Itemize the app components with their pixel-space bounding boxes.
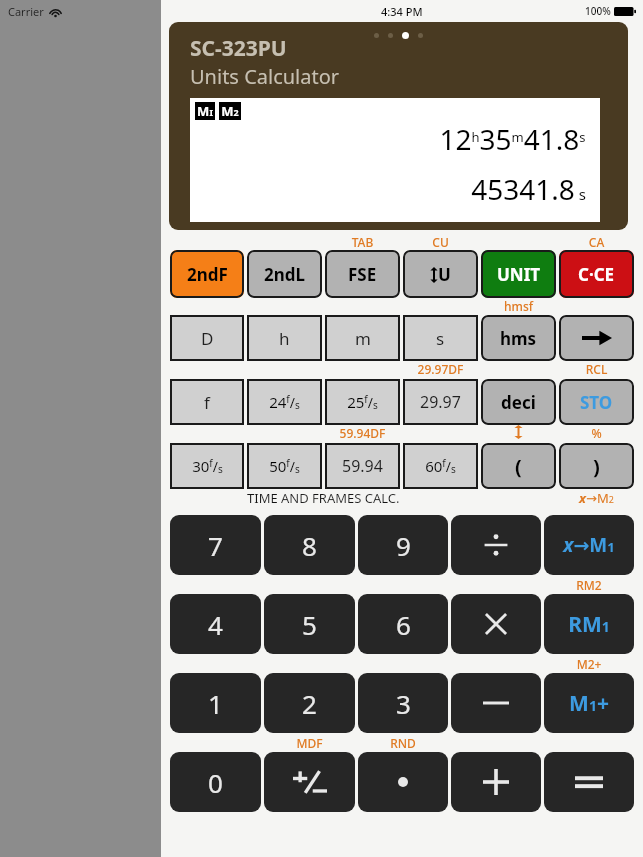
staticText: 4 xyxy=(208,607,223,642)
button[interactable]: 6 xyxy=(358,594,448,654)
staticText: RCL xyxy=(559,361,634,377)
button[interactable]: 2ndF xyxy=(170,250,244,298)
button[interactable]: x→M1 xyxy=(544,515,634,575)
button[interactable]: 60f/s xyxy=(403,443,478,489)
button[interactable]: 50f/s xyxy=(247,443,322,489)
staticText: C·CE xyxy=(578,263,615,286)
button[interactable]: 29.97 xyxy=(403,379,478,425)
staticText: FSE xyxy=(348,263,377,286)
button[interactable]: Plus minus xyxy=(264,752,355,812)
button[interactable]: ) xyxy=(559,443,634,489)
staticText: 2 xyxy=(302,686,317,721)
button[interactable]: C·CE xyxy=(559,250,634,298)
staticText: Units Calculator xyxy=(190,63,340,90)
staticText: 100% xyxy=(585,4,611,18)
staticText: MI xyxy=(197,102,213,120)
staticText: 30f/s xyxy=(192,456,223,476)
other: Minus xyxy=(483,700,509,706)
button[interactable]: 9 xyxy=(358,515,448,575)
staticText: 12h35m41.8s xyxy=(439,120,586,158)
button[interactable]: m xyxy=(325,315,400,361)
button[interactable]: STO xyxy=(559,379,634,425)
staticText: 24f/s xyxy=(269,392,300,412)
staticText: 59.94DF xyxy=(325,425,400,441)
staticText: hms xyxy=(500,327,537,350)
button[interactable]: 1 xyxy=(170,673,261,733)
staticText: 0 xyxy=(208,765,223,800)
staticText: 59.94 xyxy=(342,455,383,477)
staticText: MDF xyxy=(264,735,355,751)
staticText: m xyxy=(355,327,371,350)
button[interactable]: 4 xyxy=(170,594,261,654)
button[interactable]: Divide xyxy=(451,515,541,575)
button[interactable]: 7 xyxy=(170,515,261,575)
button[interactable]: Multiply xyxy=(451,594,541,654)
button[interactable]: f xyxy=(170,379,244,425)
staticText: hmsf xyxy=(481,298,556,314)
staticText: 2ndL xyxy=(264,263,306,286)
staticText: Carrier xyxy=(8,4,44,19)
button[interactable]: 24f/s xyxy=(247,379,322,425)
staticText: M2+ xyxy=(544,656,634,672)
staticText: f xyxy=(204,391,210,414)
staticText: 1 xyxy=(208,686,223,721)
other: Multiply xyxy=(484,612,508,636)
staticText: 8 xyxy=(302,528,317,563)
staticText: STO xyxy=(580,391,613,414)
staticText: M1+ xyxy=(569,689,609,718)
other: Equals xyxy=(575,773,603,791)
staticText: 2ndF xyxy=(187,263,228,286)
button[interactable]: UNIT xyxy=(481,250,556,298)
staticText: s xyxy=(436,327,445,350)
staticText: UNIT xyxy=(497,263,541,286)
button[interactable]: Minus xyxy=(451,673,541,733)
button[interactable]: Decimal point xyxy=(358,752,448,812)
button[interactable]: 8 xyxy=(264,515,355,575)
button[interactable]: 30f/s xyxy=(170,443,244,489)
staticText: 29.97DF xyxy=(403,361,478,377)
staticText: TIME AND FRAMES CALC. xyxy=(247,489,400,507)
other: Next xyxy=(582,330,612,346)
button[interactable]: 2ndL xyxy=(247,250,322,298)
staticText: CA xyxy=(559,234,634,250)
button[interactable]: 25f/s xyxy=(325,379,400,425)
button[interactable]: Equals xyxy=(544,752,634,812)
staticText: deci xyxy=(501,391,536,414)
button[interactable]: 59.94 xyxy=(325,443,400,489)
staticText: TAB xyxy=(325,234,400,250)
button[interactable]: D xyxy=(170,315,244,361)
other: Plus minus xyxy=(293,769,327,795)
button[interactable]: s xyxy=(403,315,478,361)
staticText: SC-323PU xyxy=(190,34,287,63)
staticText: RND xyxy=(358,735,448,751)
staticText: x→M1 xyxy=(563,532,615,558)
button[interactable]: M1+ xyxy=(544,673,634,733)
staticText: ( xyxy=(515,453,522,480)
staticText: 25f/s xyxy=(347,392,378,412)
staticText: % xyxy=(559,425,634,441)
button[interactable]: FSE xyxy=(325,250,400,298)
other: Divide xyxy=(483,532,509,558)
staticText: 50f/s xyxy=(269,456,300,476)
staticText: 45341.8 s xyxy=(471,170,586,208)
button[interactable]: 2 xyxy=(264,673,355,733)
staticText: x→M2 xyxy=(579,489,614,507)
button[interactable]: Next xyxy=(559,315,634,361)
staticText: ) xyxy=(593,453,600,480)
button[interactable]: hms xyxy=(481,315,556,361)
button[interactable]: 5 xyxy=(264,594,355,654)
staticText: 5 xyxy=(302,607,317,642)
other: Decimal point xyxy=(398,777,408,787)
other: Plus xyxy=(483,769,509,795)
button[interactable]: 0 xyxy=(170,752,261,812)
button[interactable]: RM1 xyxy=(544,594,634,654)
button[interactable]: ( xyxy=(481,443,556,489)
button[interactable]: h xyxy=(247,315,322,361)
button[interactable]: deci xyxy=(481,379,556,425)
button[interactable]: Plus xyxy=(451,752,541,812)
staticText: 60f/s xyxy=(425,456,456,476)
staticText: 4:34 PM xyxy=(381,4,423,19)
button[interactable]: U xyxy=(403,250,478,298)
button[interactable]: 3 xyxy=(358,673,448,733)
staticText: CU xyxy=(403,234,478,250)
